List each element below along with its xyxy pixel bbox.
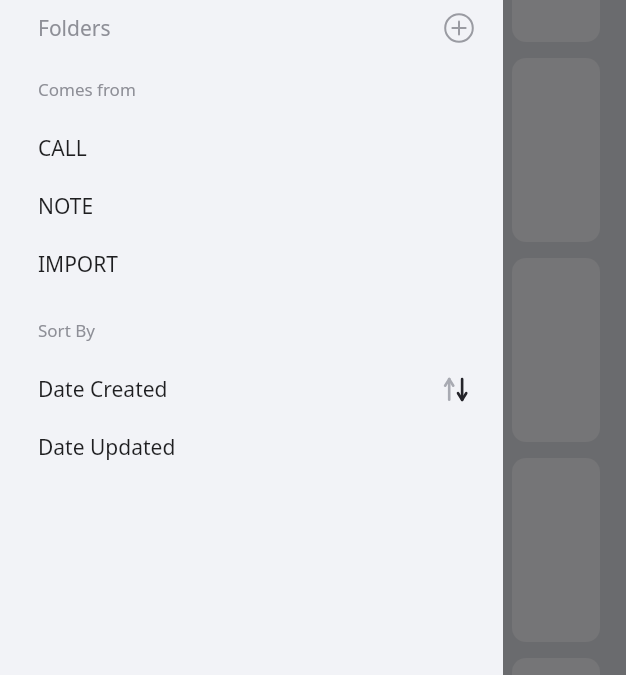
button[interactable]: NOTE	[0, 177, 503, 235]
staticText: NOTE	[38, 192, 94, 221]
staticText: Sort By	[38, 319, 95, 342]
staticText: Date Updated	[38, 433, 176, 462]
other: Toggle sort direction	[439, 374, 473, 404]
staticText: CALL	[38, 134, 87, 163]
staticText: Date Created	[38, 375, 168, 404]
button[interactable]: CALL	[0, 119, 503, 177]
button[interactable]: Date Created	[0, 360, 503, 418]
button[interactable]: IMPORT	[0, 235, 503, 293]
staticText: IMPORT	[38, 250, 119, 279]
button[interactable]: Add folder	[437, 6, 481, 50]
staticText: Comes from	[38, 78, 136, 101]
staticText: Folders	[38, 14, 111, 43]
button[interactable]: Date Updated	[0, 418, 503, 476]
